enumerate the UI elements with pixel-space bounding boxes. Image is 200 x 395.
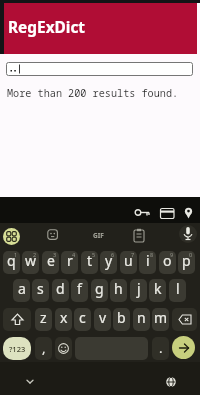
staticText: x bbox=[60, 308, 68, 327]
staticText: o bbox=[163, 251, 172, 270]
button[interactable]: a bbox=[13, 279, 30, 302]
button[interactable] bbox=[181, 225, 195, 243]
button[interactable]: ?123 bbox=[3, 337, 31, 360]
staticText: . bbox=[159, 339, 163, 357]
staticText: 4 bbox=[72, 251, 76, 258]
staticText: p bbox=[182, 251, 191, 270]
staticText: j bbox=[137, 279, 141, 298]
staticText: 6 bbox=[111, 251, 115, 258]
button[interactable]: u bbox=[120, 251, 137, 274]
staticText: l bbox=[176, 279, 180, 298]
staticText: h bbox=[114, 279, 123, 298]
staticText: u bbox=[124, 251, 133, 270]
staticText: q bbox=[7, 251, 16, 270]
button[interactable]: f bbox=[71, 279, 88, 302]
staticText: f bbox=[77, 279, 82, 298]
button[interactable] bbox=[47, 229, 59, 241]
button[interactable]: i bbox=[139, 251, 156, 274]
button[interactable]: g bbox=[91, 279, 108, 302]
staticText: RegExDict bbox=[8, 17, 86, 38]
staticText: v bbox=[99, 308, 107, 327]
staticText: b bbox=[117, 308, 126, 327]
staticText: w bbox=[25, 251, 37, 270]
button[interactable] bbox=[3, 308, 31, 331]
staticText: k bbox=[154, 279, 162, 298]
staticText: r bbox=[67, 251, 73, 270]
button[interactable]: b bbox=[113, 308, 130, 331]
staticText: 2 bbox=[33, 251, 37, 258]
button[interactable] bbox=[24, 377, 36, 386]
staticText: s bbox=[37, 279, 44, 298]
button[interactable]: p bbox=[178, 251, 195, 274]
button[interactable]: z bbox=[35, 308, 52, 331]
button[interactable] bbox=[158, 204, 177, 222]
staticText: e bbox=[47, 251, 55, 270]
staticText: i bbox=[146, 251, 150, 270]
button[interactable] bbox=[3, 228, 20, 245]
staticText: c bbox=[79, 308, 86, 327]
button[interactable] bbox=[172, 308, 197, 331]
staticText: More than 200 results found. bbox=[7, 86, 179, 100]
staticText: n bbox=[137, 308, 146, 327]
button[interactable] bbox=[55, 337, 72, 360]
button[interactable] bbox=[6, 62, 193, 76]
button[interactable]: x bbox=[55, 308, 72, 331]
staticText: 9 bbox=[170, 251, 174, 258]
button[interactable]: o bbox=[159, 251, 176, 274]
staticText: g bbox=[95, 279, 104, 298]
button[interactable]: , bbox=[35, 337, 52, 360]
button[interactable]: q bbox=[3, 251, 20, 274]
button[interactable] bbox=[172, 336, 195, 359]
button[interactable]: d bbox=[52, 279, 69, 302]
staticText: m bbox=[154, 308, 168, 327]
staticText: GIF bbox=[93, 231, 104, 240]
button[interactable]: k bbox=[149, 279, 166, 302]
staticText: 1 bbox=[14, 251, 18, 258]
staticText: , bbox=[42, 339, 46, 357]
staticText: a bbox=[18, 279, 26, 298]
button[interactable] bbox=[165, 376, 177, 388]
button[interactable]: m bbox=[152, 308, 169, 331]
button[interactable] bbox=[181, 204, 197, 222]
staticText: y bbox=[105, 251, 113, 270]
staticText: z bbox=[40, 308, 47, 327]
button[interactable] bbox=[131, 204, 153, 222]
staticText: 0 bbox=[189, 251, 193, 258]
staticText: t bbox=[87, 251, 93, 270]
button[interactable]: s bbox=[32, 279, 49, 302]
button[interactable]: w bbox=[22, 251, 39, 274]
staticText: 3 bbox=[53, 251, 57, 258]
button[interactable]: n bbox=[133, 308, 150, 331]
button[interactable]: e bbox=[42, 251, 59, 274]
button[interactable]: y bbox=[100, 251, 117, 274]
staticText: 7 bbox=[131, 251, 135, 258]
button[interactable]: t bbox=[81, 251, 98, 274]
staticText: ?123 bbox=[9, 344, 26, 354]
button[interactable]: . bbox=[152, 337, 169, 360]
button[interactable]: j bbox=[130, 279, 147, 302]
button[interactable]: GIF bbox=[88, 228, 108, 242]
button[interactable]: v bbox=[94, 308, 111, 331]
staticText: 8 bbox=[150, 251, 154, 258]
button[interactable] bbox=[133, 228, 145, 243]
staticText: d bbox=[56, 279, 65, 298]
staticText: 5 bbox=[92, 251, 96, 258]
button[interactable]: h bbox=[110, 279, 127, 302]
button[interactable]: l bbox=[169, 279, 186, 302]
button[interactable]: c bbox=[74, 308, 91, 331]
button[interactable]: r bbox=[61, 251, 78, 274]
